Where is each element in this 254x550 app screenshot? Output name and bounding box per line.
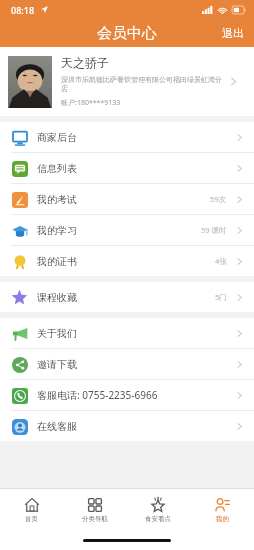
staticText: 邀请下载 <box>37 358 77 371</box>
button[interactable]: 邀请下载 <box>0 349 254 380</box>
staticText: 4张 <box>215 256 227 266</box>
button[interactable]: 我的学习 <box>0 215 254 246</box>
staticText: 退出 <box>222 26 244 40</box>
staticText: 我的 <box>216 515 229 523</box>
button[interactable]: 商家后台 <box>0 122 254 153</box>
button[interactable]: 信息列表 <box>0 153 254 184</box>
button[interactable]: 首页 <box>0 489 63 530</box>
staticText: 食安看点 <box>145 515 171 523</box>
button[interactable]: 分类导航 <box>63 489 126 530</box>
button[interactable]: 食安看点 <box>126 489 190 530</box>
staticText: 分类导航 <box>82 515 108 523</box>
staticText: 我的学习 <box>37 224 77 237</box>
staticText: 客服电话: 0755-2235-6966 <box>37 388 158 402</box>
button[interactable]: 客服电话: 0755-2235-6966 <box>0 380 254 411</box>
staticText: 08:18 <box>11 4 35 16</box>
staticText: 首页 <box>25 515 38 523</box>
staticText: 信息列表 <box>37 162 77 175</box>
button[interactable]: 退出 <box>212 22 254 44</box>
staticText: 在线客服 <box>37 420 77 433</box>
staticText: 会员中心 <box>97 24 157 43</box>
staticText: 课程收藏 <box>37 291 77 304</box>
button[interactable]: 在线客服 <box>0 411 254 441</box>
staticText: 账户:180****9133 <box>61 98 121 108</box>
staticText: 商家后台 <box>37 131 77 144</box>
button[interactable]: 我的考试 <box>0 184 254 215</box>
staticText: 59 课时 <box>201 225 227 235</box>
button[interactable]: 课程收藏 <box>0 282 254 312</box>
staticText: 59次 <box>210 194 227 204</box>
staticText: 我的证书 <box>37 255 77 268</box>
staticText: 天之骄子 <box>61 55 109 70</box>
staticText: 关于我们 <box>37 327 77 340</box>
staticText: 我的考试 <box>37 193 77 206</box>
button[interactable]: 我的证书 <box>0 246 254 276</box>
button[interactable]: 天之骄子 <box>0 47 254 116</box>
button[interactable]: 我的 <box>190 489 254 530</box>
staticText: 5门 <box>215 292 227 302</box>
button[interactable]: 关于我们 <box>0 318 254 349</box>
staticText: 深圳市乐凯德比萨餐饮管理有限公司福田绿景虹湾分店 <box>61 75 223 93</box>
